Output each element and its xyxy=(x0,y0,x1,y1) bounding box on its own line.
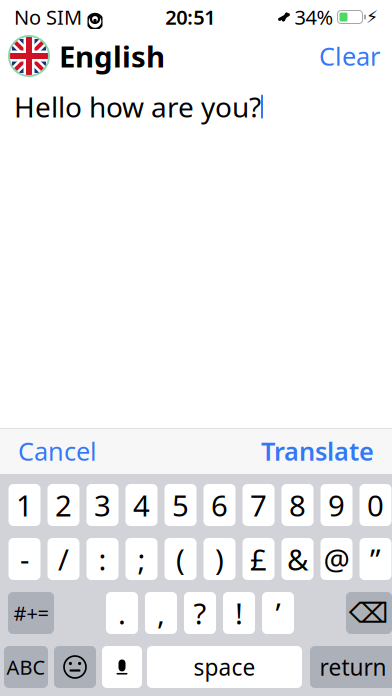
staticText: 0 xyxy=(367,485,384,524)
staticText: / xyxy=(58,539,69,578)
staticText: 1 xyxy=(16,485,33,524)
button[interactable]: Clear xyxy=(319,39,380,73)
staticText: 3 xyxy=(94,485,111,524)
staticText: Hello how are you? xyxy=(14,88,261,125)
button[interactable]: 9 xyxy=(320,484,352,526)
staticText: ” xyxy=(370,539,381,578)
button[interactable]: 6 xyxy=(203,484,235,526)
staticText: . xyxy=(118,593,126,632)
staticText: : xyxy=(98,539,106,578)
button[interactable]: Translate xyxy=(261,434,374,468)
button[interactable]: £ xyxy=(242,538,274,580)
button[interactable]: , xyxy=(145,592,177,634)
button[interactable]: ! xyxy=(223,592,255,634)
staticText: ( xyxy=(176,539,185,578)
staticText: @ xyxy=(323,539,349,578)
button[interactable]: 5 xyxy=(164,484,196,526)
button[interactable]: 7 xyxy=(242,484,274,526)
button[interactable]: / xyxy=(47,538,79,580)
staticText: ! xyxy=(235,593,243,632)
staticText: 9 xyxy=(328,485,345,524)
staticText: space xyxy=(193,652,255,682)
staticText: return xyxy=(319,652,386,682)
staticText: 7 xyxy=(250,485,267,524)
staticText: Clear xyxy=(319,39,380,73)
staticText: , xyxy=(157,593,165,632)
button[interactable]: 1 xyxy=(8,484,40,526)
button[interactable]: Dictate xyxy=(102,646,142,688)
staticText: ) xyxy=(215,539,224,578)
button[interactable]: : xyxy=(86,538,118,580)
button[interactable]: space xyxy=(147,646,302,688)
button[interactable]: 3 xyxy=(86,484,118,526)
staticText: £ xyxy=(250,539,267,578)
staticText: 20:51 xyxy=(165,4,215,30)
button[interactable]: Cancel xyxy=(18,434,97,468)
button[interactable]: ” xyxy=(359,538,391,580)
staticText: ’ xyxy=(275,593,280,632)
button[interactable]: 4 xyxy=(125,484,157,526)
button[interactable]: & xyxy=(281,538,313,580)
staticText: ; xyxy=(137,539,145,578)
staticText: 2 xyxy=(55,485,72,524)
staticText: 34% xyxy=(294,4,333,30)
staticText: - xyxy=(20,539,29,578)
button[interactable]: Emoji xyxy=(54,646,96,688)
button[interactable]: #+= xyxy=(8,592,54,634)
staticText: 5 xyxy=(172,485,189,524)
button[interactable]: @ xyxy=(320,538,352,580)
button[interactable]: return xyxy=(310,646,392,688)
button[interactable]: 0 xyxy=(359,484,391,526)
staticText: ⚡︎ xyxy=(366,7,378,27)
button[interactable]: ; xyxy=(125,538,157,580)
staticText: ⌫ xyxy=(349,597,389,629)
button[interactable]: ( xyxy=(164,538,196,580)
button[interactable]: ABC xyxy=(4,646,48,688)
staticText: English xyxy=(59,36,165,75)
staticText: 6 xyxy=(211,485,228,524)
button[interactable]: 2 xyxy=(47,484,79,526)
button[interactable]: Delete xyxy=(346,592,392,634)
staticText: No SIM xyxy=(14,4,82,30)
staticText: 8 xyxy=(289,485,306,524)
staticText: 4 xyxy=(133,485,150,524)
staticText: & xyxy=(287,539,308,578)
button[interactable]: . xyxy=(106,592,138,634)
staticText: ? xyxy=(193,593,206,632)
button[interactable]: ? xyxy=(184,592,216,634)
staticText: #+= xyxy=(13,600,48,626)
staticText: Translate xyxy=(261,434,374,468)
staticText: ABC xyxy=(6,654,45,680)
button[interactable]: - xyxy=(8,538,40,580)
button[interactable]: ’ xyxy=(262,592,294,634)
staticText: Cancel xyxy=(18,434,97,468)
button[interactable]: 8 xyxy=(281,484,313,526)
button[interactable]: ) xyxy=(203,538,235,580)
